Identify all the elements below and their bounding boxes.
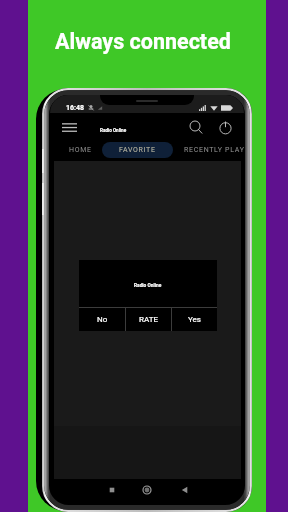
button[interactable]: Yes [172, 308, 217, 331]
staticText: Radio Online [134, 283, 162, 289]
button[interactable]: Home [140, 483, 154, 497]
button[interactable]: Search [189, 120, 204, 135]
button[interactable]: HOME [69, 146, 92, 154]
button[interactable]: Power [218, 120, 233, 135]
staticText: FAVORITE [119, 146, 156, 154]
button[interactable]: RECENTLY PLAYE [184, 146, 244, 154]
staticText: Yes [188, 315, 201, 324]
staticText: 16:48 [66, 104, 85, 112]
staticText: Always connected [55, 29, 231, 54]
staticText: No [97, 315, 108, 324]
button[interactable]: RATE [126, 308, 171, 331]
button[interactable]: Back [178, 483, 192, 497]
button[interactable]: Menu [62, 121, 77, 133]
button[interactable]: No [79, 308, 125, 331]
staticText: Radio Online [100, 128, 127, 133]
button[interactable]: Recents [105, 483, 119, 497]
staticText: RATE [139, 315, 158, 324]
button[interactable]: FAVORITE [102, 142, 173, 158]
